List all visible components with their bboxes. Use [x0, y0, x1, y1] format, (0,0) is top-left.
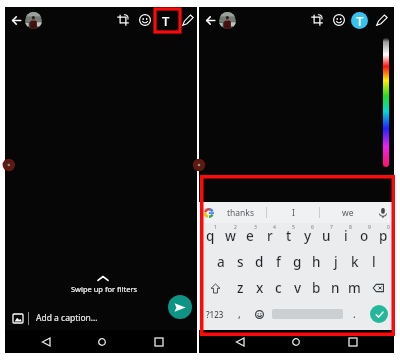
button[interactable]: c	[269, 275, 288, 301]
staticText: T	[356, 12, 364, 29]
button[interactable]: y	[298, 223, 317, 249]
button[interactable]: r	[260, 223, 279, 249]
button[interactable]: Back	[202, 12, 218, 28]
button[interactable]: Draw	[374, 12, 390, 28]
staticText: n	[331, 279, 340, 297]
staticText: v	[294, 279, 302, 297]
button[interactable]: Crop	[115, 12, 131, 28]
staticText: s	[237, 253, 244, 271]
button[interactable]: ?123	[202, 301, 228, 327]
button[interactable]: m	[345, 275, 364, 301]
button[interactable]: i	[336, 223, 355, 249]
staticText: 5	[292, 224, 295, 231]
staticText: 4	[273, 224, 276, 231]
staticText: u	[322, 227, 331, 245]
button[interactable]: Back	[233, 335, 246, 348]
button[interactable]: a	[211, 249, 231, 275]
staticText: z	[237, 279, 244, 297]
staticText: c	[275, 279, 282, 297]
button[interactable]: b	[307, 275, 326, 301]
button[interactable]: u	[317, 223, 336, 249]
button[interactable]: Shift	[200, 275, 230, 301]
button[interactable]: d	[250, 249, 269, 275]
button[interactable]: Space	[269, 301, 345, 327]
button[interactable]: Voice input	[375, 205, 391, 221]
button[interactable]: .	[345, 301, 364, 327]
button[interactable]: x	[250, 275, 269, 301]
button[interactable]: I	[267, 202, 319, 223]
staticText: f	[276, 253, 281, 271]
button[interactable]: Enter	[370, 305, 388, 323]
button[interactable]: thanks	[215, 202, 266, 223]
button[interactable]: k	[345, 249, 364, 275]
staticText: .	[353, 307, 356, 321]
button[interactable]: Add a caption…	[5, 307, 197, 329]
staticText: 3	[254, 224, 257, 231]
staticText: 1	[214, 224, 217, 231]
button[interactable]: g	[288, 249, 307, 275]
button[interactable]: Send	[168, 295, 192, 319]
staticText: 8	[349, 224, 352, 231]
button[interactable]: o	[355, 223, 374, 249]
staticText: we	[342, 207, 354, 219]
staticText: j	[334, 253, 338, 271]
staticText: x	[256, 279, 264, 297]
button[interactable]: Colour picker	[383, 38, 389, 167]
staticText: m	[348, 279, 361, 297]
button[interactable]: n	[326, 275, 345, 301]
button[interactable]: Draw	[180, 12, 196, 28]
staticText: p	[379, 227, 388, 245]
button[interactable]: s	[231, 249, 250, 275]
button[interactable]: ,	[229, 301, 249, 327]
button[interactable]: Text	[157, 12, 174, 29]
staticText: 0	[387, 224, 390, 231]
staticText: ,	[238, 307, 241, 321]
button[interactable]: h	[307, 249, 326, 275]
staticText: a	[217, 253, 225, 271]
staticText: d	[255, 253, 264, 271]
staticText: thanks	[227, 207, 254, 219]
button[interactable]: Recents	[346, 335, 359, 348]
button[interactable]: Home	[95, 335, 108, 348]
staticText: I	[292, 207, 295, 219]
staticText: h	[312, 253, 321, 271]
button[interactable]: Backspace	[364, 275, 393, 301]
button[interactable]: j	[326, 249, 345, 275]
button[interactable]: Profile	[25, 12, 42, 29]
button[interactable]: e	[240, 223, 260, 249]
staticText: e	[246, 227, 254, 245]
button[interactable]: Emoji	[249, 301, 269, 327]
staticText: 7	[330, 224, 333, 231]
button[interactable]: w	[220, 223, 240, 249]
button[interactable]: Sticker	[331, 12, 347, 28]
button[interactable]: Back	[39, 335, 52, 348]
button[interactable]: v	[288, 275, 307, 301]
button[interactable]: Crop	[309, 12, 325, 28]
button[interactable]: Home	[289, 335, 302, 348]
button[interactable]: f	[269, 249, 288, 275]
button[interactable]: Text	[351, 12, 368, 29]
button[interactable]: Recents	[152, 335, 165, 348]
button[interactable]: z	[230, 275, 250, 301]
staticText: 2	[234, 224, 237, 231]
button[interactable]: p	[374, 223, 393, 249]
button[interactable]: l	[364, 249, 383, 275]
button[interactable]: Profile	[219, 12, 236, 29]
button[interactable]: Back	[8, 12, 24, 28]
staticText: l	[372, 253, 376, 271]
staticText: i	[344, 227, 348, 245]
staticText: b	[312, 279, 321, 297]
staticText: k	[351, 253, 359, 271]
staticText: 9	[368, 224, 371, 231]
staticText: y	[304, 227, 312, 245]
button[interactable]: t	[279, 223, 298, 249]
staticText: q	[206, 227, 215, 245]
staticText: o	[360, 227, 369, 245]
staticText: t	[286, 227, 292, 245]
staticText: r	[267, 227, 273, 245]
staticText: g	[293, 253, 302, 271]
staticText: T	[162, 12, 170, 29]
button[interactable]: we	[320, 202, 375, 223]
button[interactable]: q	[200, 223, 220, 249]
button[interactable]: Sticker	[137, 12, 153, 28]
